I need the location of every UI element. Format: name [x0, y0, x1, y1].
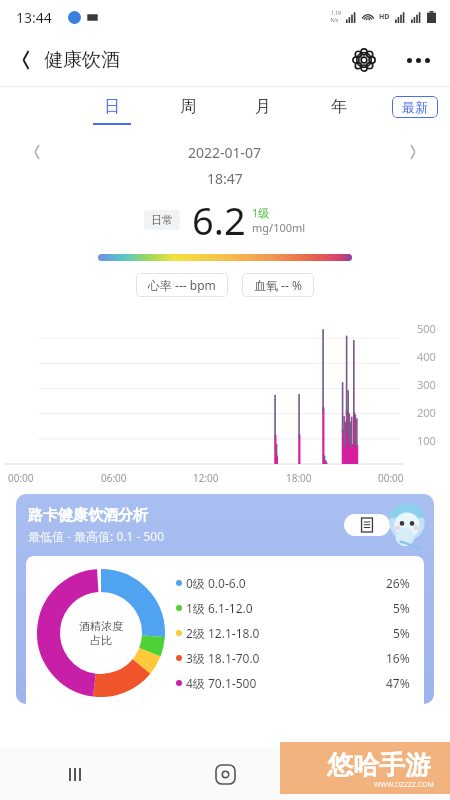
staticText: 路卡健康饮酒分析 — [28, 506, 148, 525]
button[interactable]: 路卡健康饮酒分析 — [16, 494, 434, 704]
staticText: 血氧 -- % — [254, 277, 302, 293]
button[interactable]: More options — [400, 42, 436, 78]
staticText: 18:47 — [207, 169, 243, 188]
staticText: 400 — [417, 349, 436, 364]
staticText: 月 — [255, 97, 271, 117]
staticText: 心率 --- bpm — [148, 277, 216, 293]
staticText: 最新 — [402, 99, 428, 115]
staticText: 300 — [417, 377, 436, 392]
staticText: WWW.OZZZZ.COM — [374, 780, 434, 790]
button[interactable]: Back — [8, 42, 44, 78]
staticText: 47% — [386, 675, 410, 691]
staticText: 2022-01-07 — [188, 143, 262, 162]
staticText: 1级 6.1-12.0 — [186, 600, 253, 616]
staticText: 5% — [393, 625, 410, 641]
button[interactable]: 最新 — [402, 99, 428, 115]
staticText: 00:00 — [8, 471, 34, 485]
button[interactable]: Settings — [346, 42, 382, 78]
button[interactable]: 血氧 -- % — [254, 277, 302, 293]
staticText: 最低值 - 最高值: 0.1 - 500 — [28, 528, 165, 544]
staticText: mg/100ml — [252, 220, 306, 235]
staticText: 12:00 — [193, 471, 219, 485]
staticText: 00:00 — [378, 471, 404, 485]
staticText: 13:44 — [16, 8, 52, 27]
staticText: 4级 70.1-500 — [186, 675, 257, 691]
staticText: 悠哈手游 — [327, 749, 431, 782]
button[interactable]: Next day — [398, 137, 428, 167]
staticText: HD — [379, 12, 390, 22]
staticText: 16% — [386, 650, 410, 666]
button[interactable]: Previous day — [22, 137, 52, 167]
staticText: 6.2 — [192, 194, 246, 246]
button[interactable]: Report — [360, 518, 374, 532]
staticText: 26% — [386, 575, 410, 591]
staticText: 周 — [180, 97, 196, 117]
button[interactable]: 周 — [166, 97, 210, 125]
staticText: 健康饮酒 — [44, 48, 120, 72]
button[interactable]: Back — [352, 751, 398, 797]
staticText: 占比 — [90, 633, 112, 647]
staticText: 酒精浓度 — [79, 619, 123, 633]
button[interactable]: 心率 --- bpm — [148, 277, 216, 293]
staticText: 3级 18.1-70.0 — [186, 650, 260, 666]
button[interactable]: Home — [202, 751, 248, 797]
staticText: 2级 12.1-18.0 — [186, 625, 260, 641]
button[interactable]: 月 — [241, 97, 285, 125]
staticText: 18:00 — [286, 471, 312, 485]
staticText: 1级 — [252, 205, 270, 220]
staticText: 500 — [417, 321, 436, 336]
button[interactable]: 年 — [317, 97, 361, 125]
button[interactable]: 日 — [90, 97, 134, 125]
staticText: 06:00 — [101, 471, 127, 485]
staticText: 100 — [417, 433, 436, 448]
staticText: 200 — [417, 405, 436, 420]
staticText: 年 — [331, 97, 347, 117]
staticText: 日常 — [151, 213, 173, 227]
staticText: 5% — [393, 600, 410, 616]
staticText: 日 — [104, 97, 120, 117]
staticText: 1.19 K/s — [331, 10, 341, 24]
staticText: 0级 0.0-6.0 — [186, 575, 246, 591]
button[interactable]: Recents — [52, 751, 98, 797]
